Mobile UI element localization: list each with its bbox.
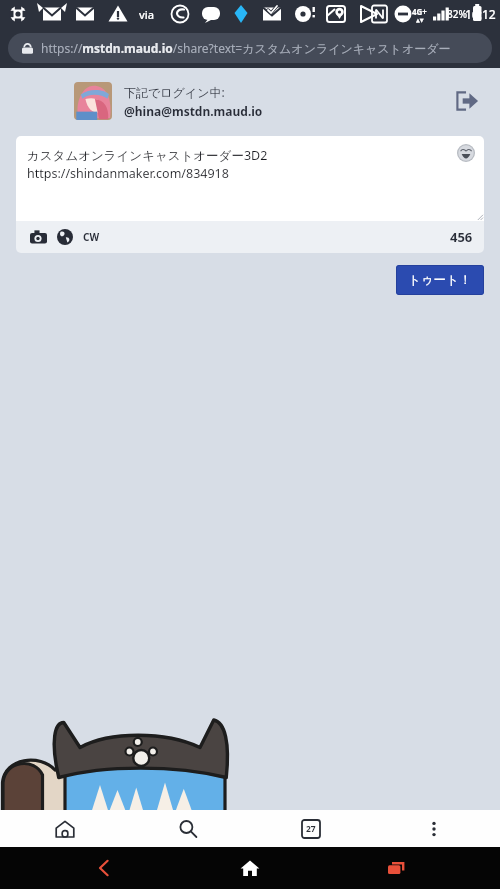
staticText: CW	[83, 230, 100, 244]
button[interactable]: Search	[171, 812, 205, 846]
staticText: 下記でログイン中:	[124, 84, 225, 100]
button[interactable]: Tabs: 27	[294, 812, 328, 846]
button[interactable]: https://mstdn.maud.io/share?text=カスタムオンラ…	[8, 33, 492, 63]
staticText: 16:12	[465, 6, 496, 22]
staticText: via	[139, 7, 155, 22]
button[interactable]: Home	[229, 847, 271, 889]
button[interactable]: Change visibility	[54, 226, 76, 248]
staticText: 27	[306, 823, 316, 835]
button[interactable]: Insert emoji	[457, 144, 475, 162]
button[interactable]: CW	[83, 230, 100, 244]
button[interactable]: Log out	[450, 84, 484, 118]
staticText: 4G+	[412, 6, 427, 17]
button[interactable]: トゥート！	[396, 265, 484, 295]
button[interactable]: Attach image	[27, 226, 49, 248]
staticText: ▲▼	[416, 17, 424, 23]
staticText: 456	[450, 228, 473, 246]
staticText: 82%	[447, 7, 467, 21]
button[interactable]: Home	[48, 812, 82, 846]
button[interactable]: Back	[83, 847, 125, 889]
staticText: トゥート！	[408, 272, 472, 288]
staticText: @hina@mstdn.maud.io	[124, 103, 263, 119]
button[interactable]: Avatar	[74, 82, 112, 120]
button[interactable]: More options	[417, 812, 451, 846]
button[interactable]: Recent apps	[375, 847, 417, 889]
staticText: https://mstdn.maud.io/share?text=カスタムオンラ…	[41, 40, 484, 56]
staticText: https://shindanmaker.com/834918	[27, 165, 229, 182]
staticText: カスタムオンラインキャストオーダー3D2	[27, 147, 268, 164]
